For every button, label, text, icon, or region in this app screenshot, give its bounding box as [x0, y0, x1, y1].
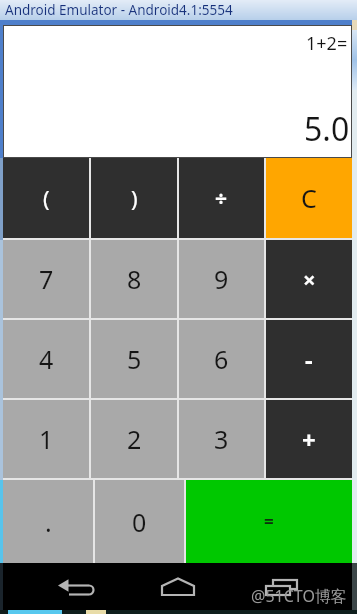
staticText: 7 [39, 262, 54, 296]
button[interactable]: . [3, 480, 93, 563]
staticText: 8 [127, 262, 142, 296]
staticText: . [45, 505, 52, 539]
button[interactable] [120, 563, 236, 610]
staticText: 5 [127, 342, 142, 376]
button[interactable]: 3 [179, 400, 264, 478]
button[interactable]: 2 [91, 400, 177, 478]
button[interactable]: C [266, 158, 352, 238]
button[interactable]: 7 [3, 240, 89, 318]
staticText: ( [43, 183, 50, 213]
button[interactable]: × [266, 240, 352, 318]
staticText: 2 [127, 422, 142, 456]
staticText: 6 [214, 342, 229, 376]
button[interactable]: 9 [179, 240, 264, 318]
staticText: 3 [214, 422, 229, 456]
staticText: + [302, 423, 316, 456]
button[interactable]: 4 [3, 320, 89, 398]
button[interactable]: - [266, 320, 352, 398]
staticText: 9 [214, 262, 229, 296]
button[interactable]: 8 [91, 240, 177, 318]
button[interactable]: ( [3, 158, 89, 238]
button[interactable]: ÷ [179, 158, 264, 238]
staticText: @51CTO博客 [251, 585, 347, 607]
staticText: ÷ [215, 184, 228, 213]
staticText: 0 [132, 505, 147, 539]
staticText: 1 [39, 422, 54, 456]
button[interactable]: + [266, 400, 352, 478]
button[interactable]: = [186, 480, 352, 563]
staticText: 5.0 [304, 107, 350, 151]
staticText: C [301, 181, 317, 215]
button[interactable]: ) [91, 158, 177, 238]
button[interactable]: 0 [95, 480, 184, 563]
staticText: ) [131, 183, 138, 213]
staticText: Android Emulator - Android4.1:5554 [5, 1, 233, 19]
button[interactable] [3, 563, 120, 610]
staticText: - [305, 343, 313, 376]
button[interactable]: 6 [179, 320, 264, 398]
staticText: = [264, 510, 274, 533]
staticText: × [303, 264, 316, 294]
staticText: 4 [39, 342, 54, 376]
button[interactable]: 5 [91, 320, 177, 398]
button[interactable] [236, 563, 352, 610]
staticText: 1+2= [306, 31, 348, 56]
button[interactable]: 1 [3, 400, 89, 478]
